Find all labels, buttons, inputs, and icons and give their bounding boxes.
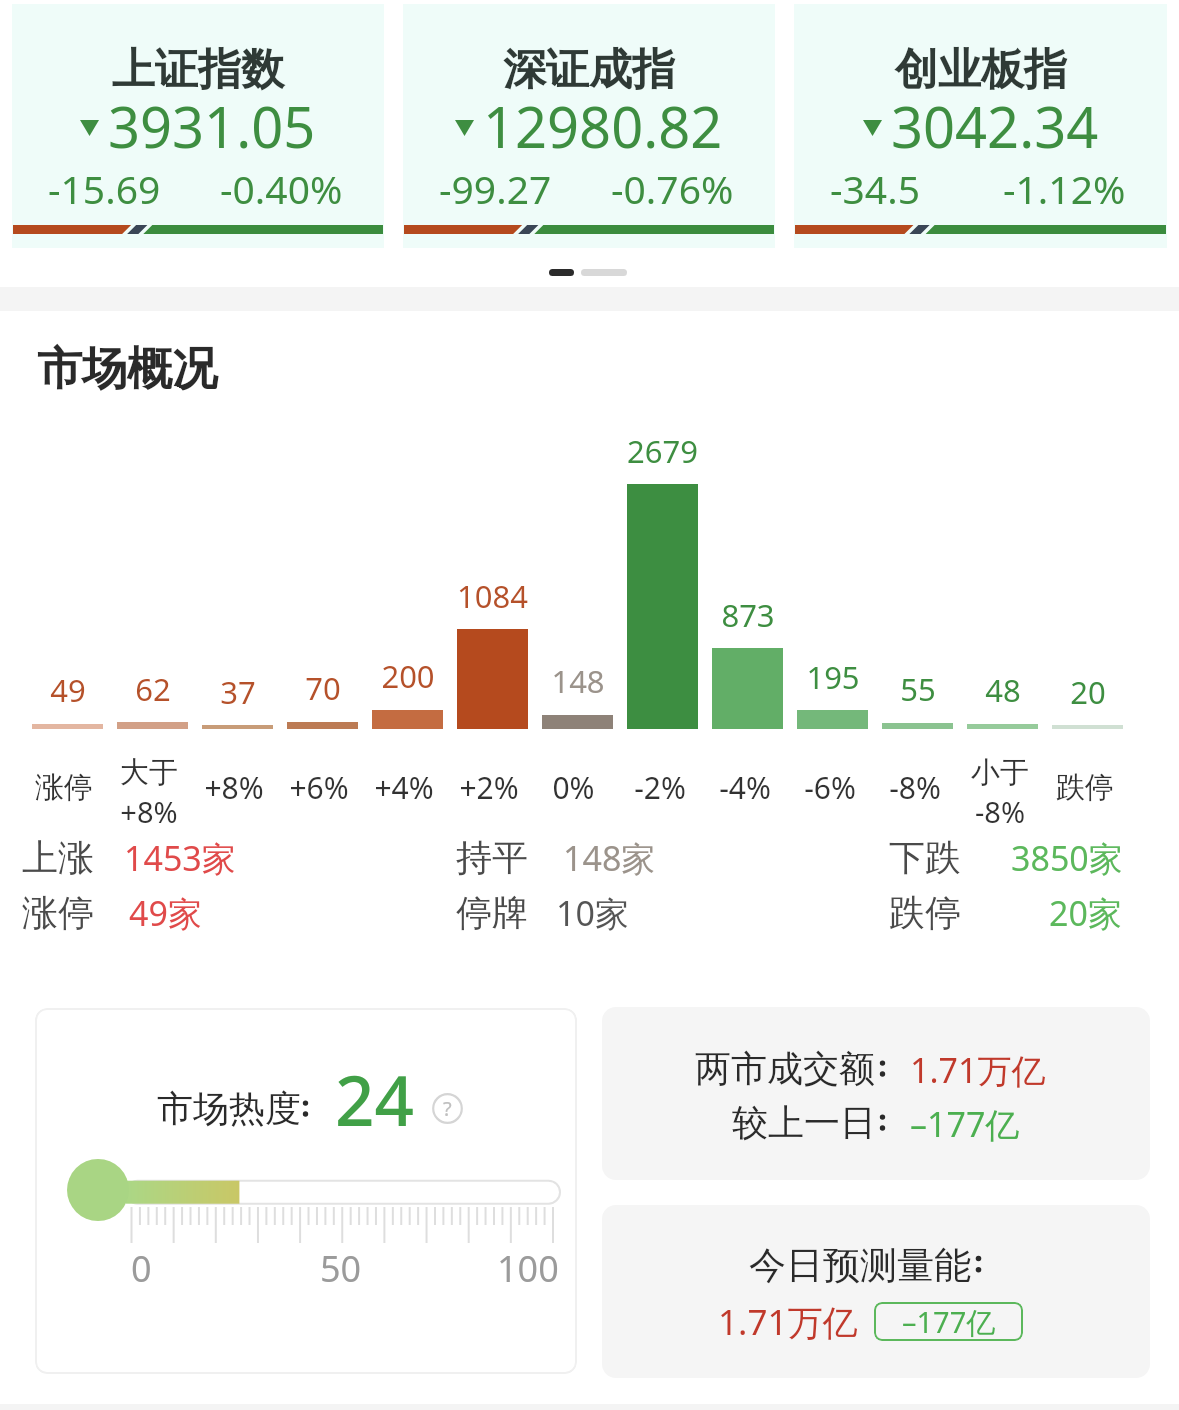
staticText: ? [443, 1095, 452, 1122]
staticText: +2% [459, 767, 519, 808]
staticText: -8% [889, 767, 941, 808]
staticText: 大于 +8% [120, 754, 178, 831]
staticText: 20 [1070, 671, 1106, 713]
staticText: 上涨 [22, 835, 94, 880]
staticText: 148 [551, 660, 605, 702]
staticText: 49 [50, 669, 86, 711]
staticText: 市场概况 [37, 341, 217, 398]
staticText: 10家 [556, 890, 629, 936]
staticText: 3931.05 [108, 88, 316, 164]
staticText: 3042.34 [891, 88, 1099, 164]
staticText: 上证指数 [112, 43, 284, 97]
staticText: 12980.82 [483, 88, 723, 164]
staticText: 跌停 [889, 890, 961, 935]
staticText: -15.69 [48, 162, 161, 215]
staticText: 持平 [456, 835, 528, 880]
staticText: 小于 -8% [971, 754, 1029, 831]
button[interactable]: 今日预测量能 [602, 1205, 1150, 1378]
staticText: 1453家 [124, 835, 236, 881]
staticText: -99.27 [439, 162, 552, 215]
staticText: 37 [220, 671, 256, 713]
staticText: 55 [900, 668, 936, 710]
staticText: 148家 [563, 835, 656, 881]
staticText: 今日预测量能 [749, 1242, 971, 1289]
staticText: 下跌 [889, 835, 961, 880]
staticText: 2679 [627, 430, 698, 472]
staticText: 0 [131, 1244, 152, 1293]
staticText: 195 [806, 656, 860, 698]
staticText: 深证成指 [503, 43, 675, 97]
staticText: 100 [497, 1244, 559, 1293]
staticText: 200 [381, 655, 435, 697]
button[interactable]: 上证指数 [12, 4, 384, 248]
staticText: 涨停 [22, 890, 94, 935]
staticText: 两市成交额 [695, 1046, 875, 1091]
button[interactable]: 创业板指 [794, 4, 1167, 248]
staticText: 涨停 [35, 769, 93, 806]
staticText: 较上一日 [732, 1100, 876, 1145]
staticText: 市场热度 [157, 1086, 301, 1131]
staticText: -34.5 [830, 162, 920, 215]
staticText: 1.71万亿 [718, 1298, 858, 1346]
staticText: 24 [335, 1052, 414, 1146]
staticText: -6% [804, 767, 856, 808]
staticText: -0.76% [611, 162, 734, 215]
staticText: 跌停 [1056, 769, 1114, 806]
staticText: 48 [985, 669, 1021, 711]
staticText: 873 [721, 594, 775, 636]
staticText: 3850家 [1011, 835, 1123, 881]
staticText: 49家 [129, 890, 202, 936]
staticText: 0% [552, 767, 595, 808]
staticText: 1.71万亿 [910, 1047, 1046, 1093]
staticText: +4% [374, 767, 434, 808]
staticText: 50 [320, 1244, 362, 1293]
staticText: 20家 [1049, 890, 1122, 936]
staticText: -1.12% [1003, 162, 1126, 215]
button[interactable]: 两市成交额 [602, 1007, 1150, 1180]
staticText: -4% [719, 767, 771, 808]
staticText: –177亿 [902, 1302, 996, 1341]
staticText: 创业板指 [895, 43, 1067, 97]
staticText: +8% [204, 767, 264, 808]
staticText: -2% [634, 767, 686, 808]
staticText: +6% [289, 767, 349, 808]
button[interactable]: 市场热度 [35, 1008, 577, 1374]
staticText: 70 [305, 667, 341, 709]
button[interactable]: 帮助 [432, 1093, 463, 1124]
staticText: -0.40% [220, 162, 343, 215]
staticText: 停牌 [456, 890, 528, 935]
button[interactable] [549, 269, 627, 276]
staticText: –177亿 [910, 1101, 1020, 1147]
button[interactable]: 深证成指 [403, 4, 775, 248]
staticText: 62 [135, 668, 171, 710]
staticText: 1084 [457, 575, 528, 617]
